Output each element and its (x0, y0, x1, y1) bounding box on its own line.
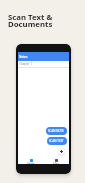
staticText: SCAN NOTE (48, 129, 64, 133)
staticText: Notes (27, 162, 35, 164)
button[interactable]: Notes (18, 52, 69, 61)
button[interactable]: SCAN TEXT (47, 137, 67, 145)
button[interactable]: Chapter 1 (18, 61, 69, 67)
staticText: Files (53, 162, 59, 164)
button[interactable]: Files (43, 152, 68, 164)
staticText: Chapter 1 (19, 62, 32, 66)
button[interactable]: Notes (18, 152, 43, 164)
button[interactable]: Add (58, 148, 65, 155)
staticText: Notes (19, 55, 28, 59)
button[interactable]: SCAN NOTE (46, 127, 67, 135)
staticText: Scan Text & Documents (8, 12, 53, 29)
staticText: SCAN TEXT (49, 139, 64, 143)
